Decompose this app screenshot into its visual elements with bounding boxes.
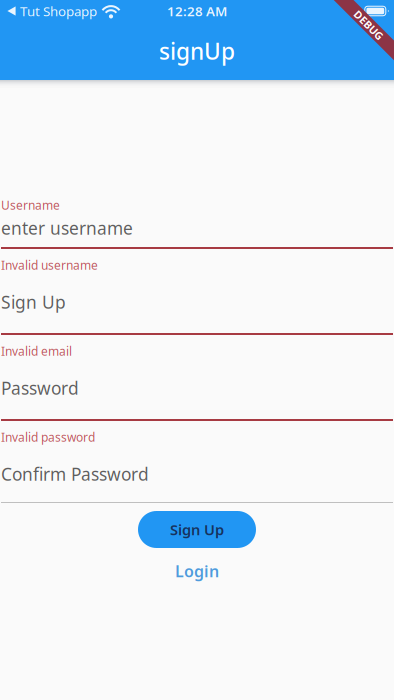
staticText: 12:28 AM <box>167 2 227 20</box>
staticText: Login <box>175 560 219 582</box>
staticText: Tut Shopapp <box>20 2 97 20</box>
staticText: Sign Up <box>1 290 66 313</box>
staticText: enter username <box>1 216 133 239</box>
staticText: Password <box>1 376 79 399</box>
button[interactable]: Login <box>175 562 219 580</box>
staticText: signUp <box>159 36 235 66</box>
staticText: Invalid username <box>1 257 98 273</box>
staticText: Invalid email <box>1 343 72 359</box>
staticText: Sign Up <box>170 520 224 539</box>
button[interactable]: Sign Up <box>138 511 256 548</box>
staticText: Username <box>1 197 60 213</box>
staticText: DEBUG <box>350 18 387 32</box>
staticText: Invalid password <box>1 429 95 445</box>
staticText: Confirm Password <box>1 462 149 485</box>
